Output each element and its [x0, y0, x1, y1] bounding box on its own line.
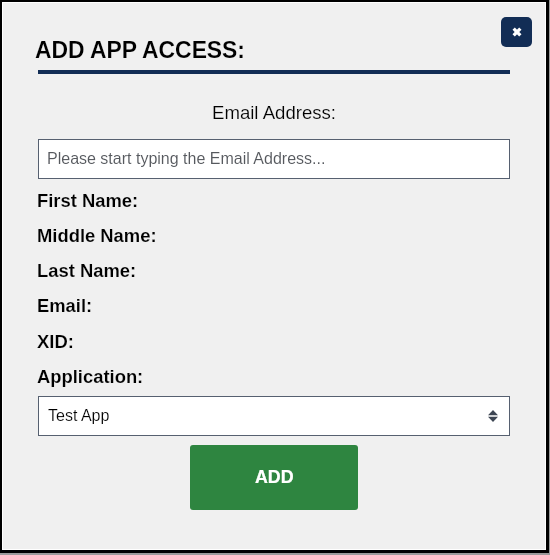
staticText: Middle Name: [37, 225, 157, 246]
button[interactable]: Close [501, 17, 532, 47]
staticText: XID: [37, 331, 74, 352]
staticText: ADD [255, 467, 294, 487]
staticText: Email: [37, 295, 93, 316]
staticText: Please start typing the Email Address... [47, 150, 326, 168]
button[interactable]: Test App [38, 396, 510, 436]
button[interactable]: Please start typing the Email Address... [38, 139, 510, 179]
staticText: Application: [37, 366, 144, 387]
staticText: ADD APP ACCESS: [35, 36, 246, 63]
staticText: Test App [48, 407, 110, 425]
staticText: Email Address: [212, 102, 337, 123]
staticText: Last Name: [37, 260, 137, 281]
staticText: First Name: [37, 190, 139, 211]
button[interactable]: ADD [190, 445, 358, 510]
